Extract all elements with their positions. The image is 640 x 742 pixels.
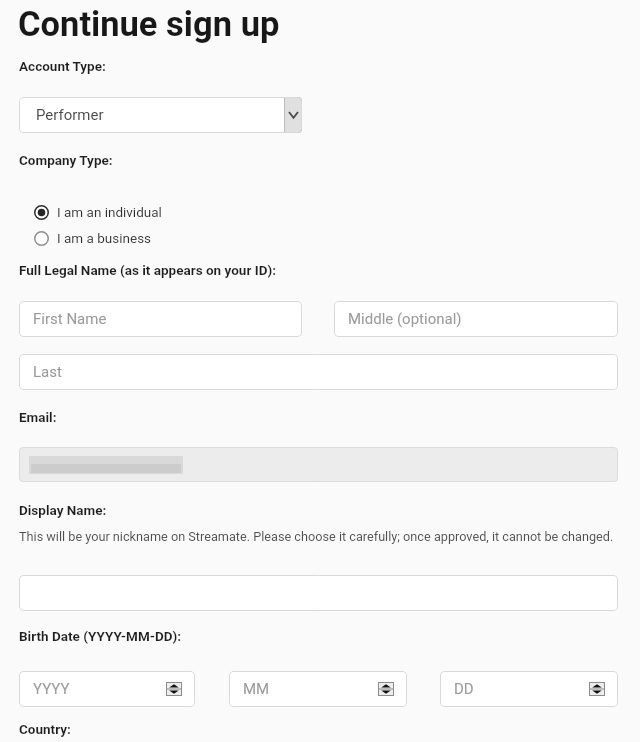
- button[interactable]: [19, 447, 618, 482]
- staticText: Company Type:: [19, 152, 113, 168]
- button[interactable]: DD: [440, 671, 618, 707]
- other: Open account type dropdown: [284, 97, 302, 133]
- other: Increase or decrease DD: [589, 682, 605, 696]
- staticText: Birth Date (YYYY-MM-DD):: [19, 628, 182, 644]
- staticText: Display Name:: [19, 502, 107, 518]
- staticText: Middle (optional): [348, 310, 462, 328]
- staticText: DD: [454, 680, 474, 698]
- staticText: Full Legal Name (as it appears on your I…: [19, 262, 276, 278]
- staticText: Country:: [19, 721, 71, 737]
- other: Increase or decrease YYYY: [166, 682, 182, 696]
- button[interactable]: First Name: [19, 301, 302, 337]
- button[interactable]: Middle (optional): [334, 301, 618, 337]
- staticText: Email:: [19, 409, 57, 425]
- button[interactable]: I am an individual: [34, 200, 162, 224]
- button[interactable]: Last: [19, 354, 618, 390]
- staticText: I am an individual: [57, 204, 162, 220]
- staticText: YYYY: [33, 680, 70, 698]
- button[interactable]: I am a business: [34, 226, 152, 250]
- staticText: MM: [243, 680, 270, 698]
- button[interactable]: Performer: [19, 97, 302, 133]
- staticText: First Name: [33, 310, 107, 328]
- staticText: Account Type:: [19, 58, 106, 74]
- button[interactable]: [19, 575, 618, 611]
- button[interactable]: MM: [229, 671, 407, 707]
- staticText: Continue sign up: [18, 4, 280, 44]
- staticText: Last: [33, 363, 62, 381]
- other: Increase or decrease MM: [378, 682, 394, 696]
- button[interactable]: YYYY: [19, 671, 195, 707]
- staticText: I am a business: [57, 230, 152, 246]
- staticText: This will be your nickname on Streamate.…: [19, 529, 614, 544]
- staticText: Performer: [36, 106, 104, 124]
